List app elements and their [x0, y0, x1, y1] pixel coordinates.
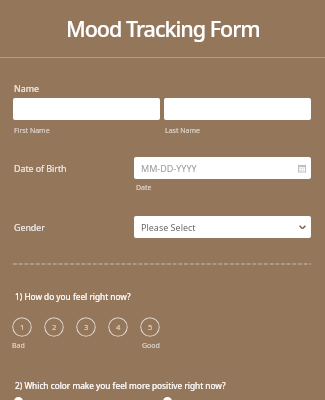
button[interactable]: First Name field [13, 98, 160, 120]
button[interactable]: Rating 4 [108, 317, 128, 337]
button[interactable]: Rating 1 [12, 317, 32, 337]
button[interactable]: Color option 2 [163, 397, 172, 400]
staticText: Good [142, 341, 160, 351]
staticText: MM-DD-YYYY [141, 162, 197, 174]
button[interactable]: MM-DD-YYYY [134, 157, 311, 179]
staticText: Date of Birth [14, 162, 67, 174]
staticText: Mood Tracking Form [66, 14, 260, 43]
staticText: First Name [14, 126, 50, 136]
staticText: 1) How do you feel right now? [15, 291, 131, 302]
staticText: 1 [20, 322, 25, 332]
staticText: 4 [116, 322, 121, 332]
staticText: Gender [14, 221, 45, 233]
staticText: Date [136, 183, 152, 193]
button[interactable]: Rating 2 [44, 317, 64, 337]
staticText: 5 [148, 322, 153, 332]
staticText: Bad [12, 341, 25, 351]
button[interactable]: Please Select [134, 216, 311, 238]
staticText: Last Name [165, 126, 200, 136]
staticText: Name [14, 82, 39, 94]
staticText: 2 [52, 322, 57, 332]
button[interactable]: Rating 5 [140, 317, 160, 337]
staticText: 3 [84, 322, 89, 332]
button[interactable]: Color option 1 [14, 397, 23, 400]
staticText: Please Select [141, 221, 196, 233]
button[interactable]: Rating 3 [76, 317, 96, 337]
button[interactable]: Last Name field [164, 98, 311, 120]
staticText: 2) Which color make you feel more positi… [15, 380, 226, 391]
